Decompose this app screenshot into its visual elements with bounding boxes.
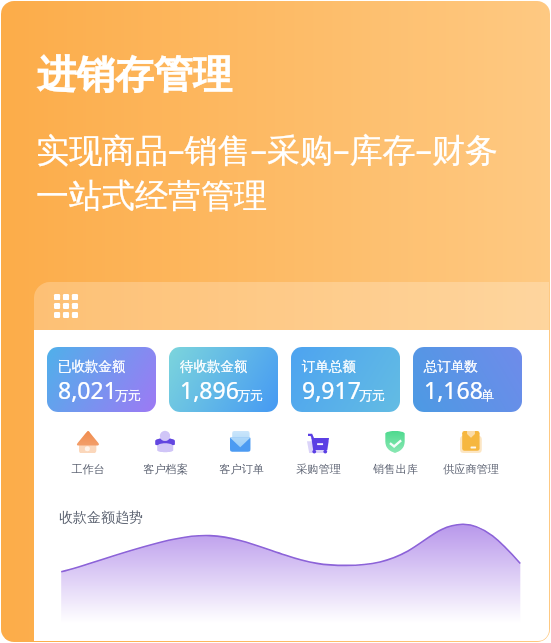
staticText: 已收款金额 [58,358,126,375]
staticText: 9,917 [302,374,361,405]
staticText: 1,896 [180,374,239,405]
staticText: 进销存管理 [37,50,232,99]
button[interactable]: 供应商管理 [433,431,509,476]
staticText: 待收款金额 [180,358,248,375]
staticText: 销售出库 [373,462,418,476]
button[interactable]: 总订单数 [413,347,522,412]
staticText: 采购管理 [296,462,341,476]
staticText: 总订单数 [424,358,478,375]
staticText: 万元 [237,387,263,403]
staticText: 实现商品–销售–采购–库存–财务 一站式经营管理 [36,127,498,217]
staticText: 客户订单 [219,462,264,476]
staticText: 订单总额 [302,358,356,375]
staticText: 万元 [359,387,385,403]
staticText: 工作台 [71,462,105,476]
staticText: 收款金额趋势 [59,509,143,527]
staticText: 1,168 [424,374,483,405]
staticText: 供应商管理 [443,462,499,476]
staticText: 万元 [115,387,141,403]
staticText: 单 [481,387,494,403]
staticText: 客户档案 [143,462,188,476]
button[interactable]: 采购管理 [280,431,356,476]
button[interactable]: 销售出库 [357,431,433,476]
button[interactable]: 客户订单 [203,431,279,476]
button[interactable]: 已收款金额 [47,347,156,412]
button[interactable]: 订单总额 [291,347,400,412]
button[interactable]: 客户档案 [127,431,203,476]
button[interactable]: Apps menu [54,294,78,318]
button[interactable]: 工作台 [50,431,126,476]
button[interactable]: 待收款金额 [169,347,278,412]
staticText: 8,021 [58,374,117,405]
